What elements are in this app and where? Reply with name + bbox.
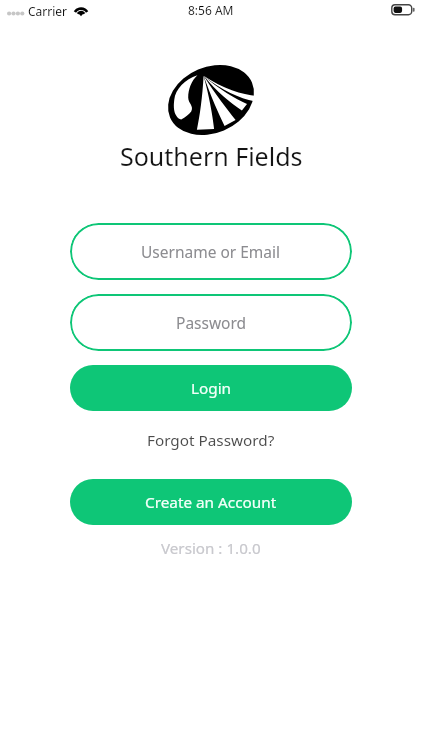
button[interactable]: Forgot Password?	[133, 424, 289, 457]
button[interactable]: Username or Email	[70, 223, 352, 280]
button[interactable]: Password	[70, 294, 352, 351]
staticText: Version : 1.0.0	[161, 538, 261, 559]
other: Battery	[391, 4, 415, 16]
staticText: Login	[191, 378, 232, 399]
other: Wi-Fi	[73, 4, 89, 16]
button[interactable]: Login	[70, 365, 352, 411]
staticText: Username or Email	[141, 241, 281, 262]
staticText: Create an Account	[145, 492, 277, 513]
staticText: Southern Fields	[120, 139, 303, 173]
staticText: 8:56 AM	[188, 2, 234, 18]
button[interactable]: Create an Account	[70, 479, 352, 525]
staticText: Forgot Password?	[147, 430, 275, 451]
staticText: Password	[176, 312, 247, 333]
staticText: Carrier	[28, 3, 68, 19]
